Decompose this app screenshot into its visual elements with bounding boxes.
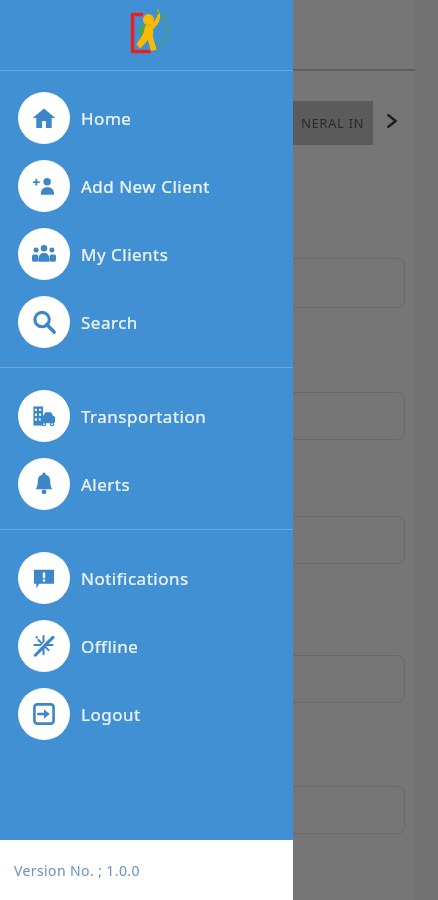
button[interactable]: Home: [0, 84, 293, 152]
staticText: Version No. ; 1.0.0: [14, 861, 140, 880]
button[interactable]: Next tab: [376, 103, 408, 139]
button[interactable]: Offline: [0, 612, 293, 680]
button[interactable]: Logout: [0, 680, 293, 748]
button[interactable]: Transportation: [0, 382, 293, 450]
staticText: Notifications: [81, 567, 189, 590]
button[interactable]: My Clients: [0, 220, 293, 288]
button[interactable]: Notifications: [0, 544, 293, 612]
button[interactable]: Add New Client: [0, 152, 293, 220]
staticText: Add New Client: [81, 175, 210, 198]
staticText: My Clients: [81, 243, 169, 266]
staticText: Home: [81, 107, 132, 130]
staticText: NERAL IN: [301, 114, 365, 132]
staticText: Search: [81, 311, 138, 334]
button[interactable]: Alerts: [0, 450, 293, 518]
staticText: Offline: [81, 635, 139, 658]
button[interactable]: Search: [0, 288, 293, 356]
staticText: Alerts: [81, 473, 131, 496]
staticText: Transportation: [81, 405, 207, 428]
staticText: Logout: [81, 703, 141, 726]
